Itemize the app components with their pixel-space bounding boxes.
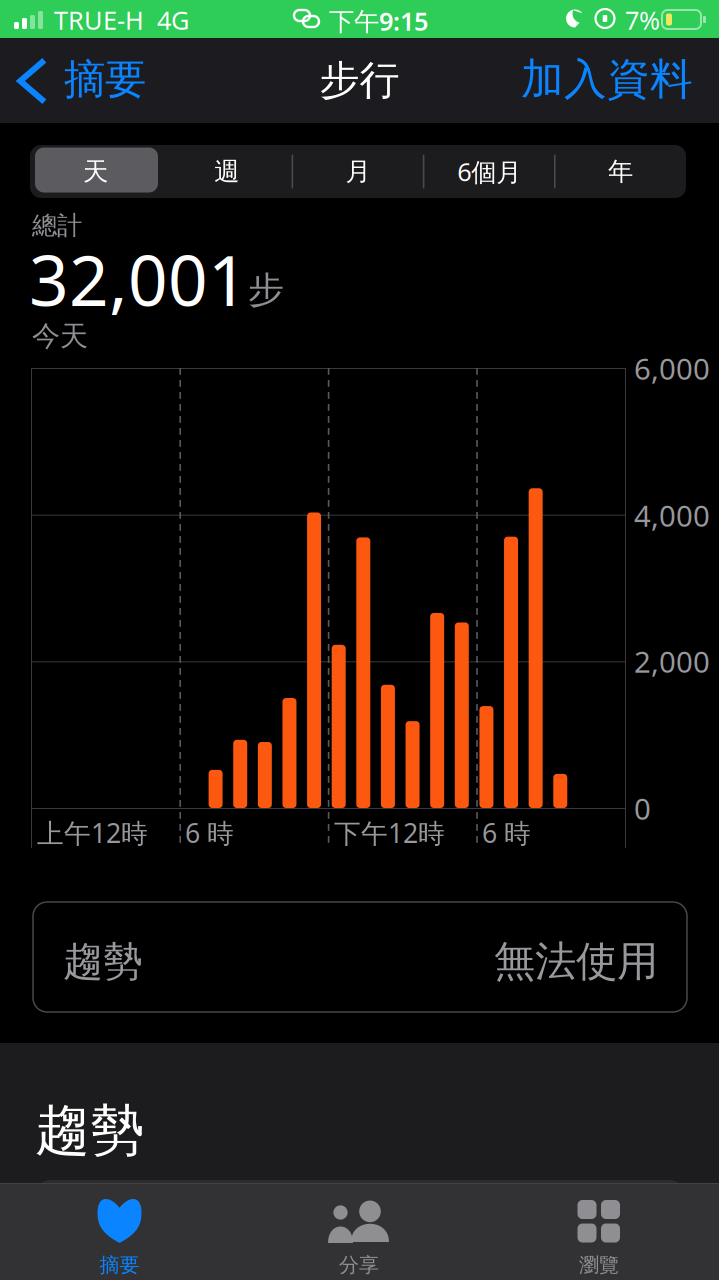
staticText: 週 xyxy=(214,156,239,187)
staticText: 摘要 xyxy=(64,54,146,105)
staticText: 6 時 xyxy=(185,815,234,850)
button[interactable]: 天 xyxy=(30,145,161,198)
staticText: 趨勢 xyxy=(63,937,143,986)
staticText: 下午12時 xyxy=(334,815,445,850)
staticText: 32,001 xyxy=(29,233,248,325)
staticText: 加入資料 xyxy=(521,53,693,105)
button[interactable]: 6個月 xyxy=(424,145,555,198)
staticText: 下午9:15 xyxy=(329,4,428,38)
button[interactable]: 年 xyxy=(555,145,686,198)
button[interactable]: 週 xyxy=(161,145,292,198)
staticText: 4,000 xyxy=(634,496,710,535)
staticText: 月 xyxy=(345,156,370,187)
staticText: 瀏覽 xyxy=(579,1253,619,1277)
button[interactable]: 摘要 xyxy=(0,1183,239,1280)
button[interactable]: 月 xyxy=(292,145,424,198)
staticText: 步 xyxy=(248,268,284,312)
staticText: 0 xyxy=(634,789,651,828)
button[interactable]: 摘要 xyxy=(0,38,160,123)
staticText: 趨勢 xyxy=(35,1097,145,1164)
staticText: 天 xyxy=(83,156,108,187)
staticText: 分享 xyxy=(339,1253,379,1277)
button[interactable]: 加入資料 xyxy=(508,38,704,123)
button[interactable]: 趨勢 xyxy=(33,902,687,1012)
staticText: 年 xyxy=(608,156,633,187)
staticText: 上午12時 xyxy=(37,815,148,850)
button[interactable]: 瀏覽 xyxy=(479,1183,719,1280)
staticText: 6個月 xyxy=(457,155,521,188)
staticText: 2,000 xyxy=(634,642,710,681)
staticText: 4G xyxy=(157,3,189,37)
staticText: TRUE-H xyxy=(54,3,144,37)
staticText: 總計 xyxy=(32,210,82,241)
staticText: 步行 xyxy=(319,56,399,105)
staticText: 摘要 xyxy=(99,1253,139,1277)
staticText: 6 時 xyxy=(482,815,531,850)
staticText: 今天 xyxy=(32,319,88,353)
button[interactable]: 分享 xyxy=(239,1183,479,1280)
staticText: 無法使用 xyxy=(494,936,658,987)
staticText: 7% xyxy=(625,3,660,37)
staticText: 6,000 xyxy=(634,349,710,388)
